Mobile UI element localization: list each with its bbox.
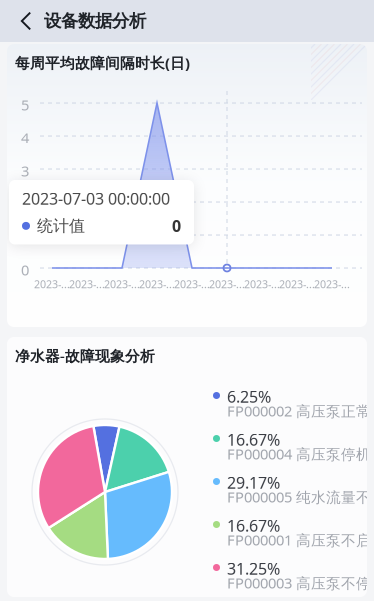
staticText: 3 [21,161,29,180]
staticText: 6.25% [227,386,271,407]
staticText: 2023-... [244,277,280,291]
staticText: FP000005 纯水流量不足 [227,487,374,507]
staticText: 2023-... [279,277,315,291]
staticText: 统计值 [37,216,85,236]
staticText: 4 [21,128,29,147]
staticText: 2023-... [139,277,175,291]
staticText: 31.25% [227,558,280,579]
staticText: 0 [21,260,29,279]
staticText: FP000003 高压泵不停机 [227,573,374,593]
button[interactable]: Back [0,1,44,40]
staticText: 2023-... [174,277,210,291]
staticText: 16.67% [227,429,280,450]
staticText: 1 [21,227,29,246]
staticText: FP000002 高压泵正常 [227,401,371,421]
staticText: 0 [172,215,181,236]
staticText: FP000004 高压泵停机 [227,444,371,464]
staticText: 16.67% [227,515,280,536]
staticText: 设备数据分析 [44,10,146,32]
staticText: 2023-07-03 00:00:00 [22,188,170,209]
staticText: 2023-... [104,277,140,291]
staticText: 5 [21,95,29,114]
staticText: 29.17% [227,472,280,493]
staticText: FP000001 高压泵不启动 [227,530,374,550]
staticText: 每周平均故障间隔时长(日) [15,53,190,72]
staticText: 2023-... [69,277,105,291]
staticText: 2023-... [34,277,70,291]
staticText: 2023-... [209,277,245,291]
staticText: 净水器-故障现象分析 [15,346,155,365]
staticText: 2 [21,194,29,213]
staticText: 2023-... [314,277,350,291]
